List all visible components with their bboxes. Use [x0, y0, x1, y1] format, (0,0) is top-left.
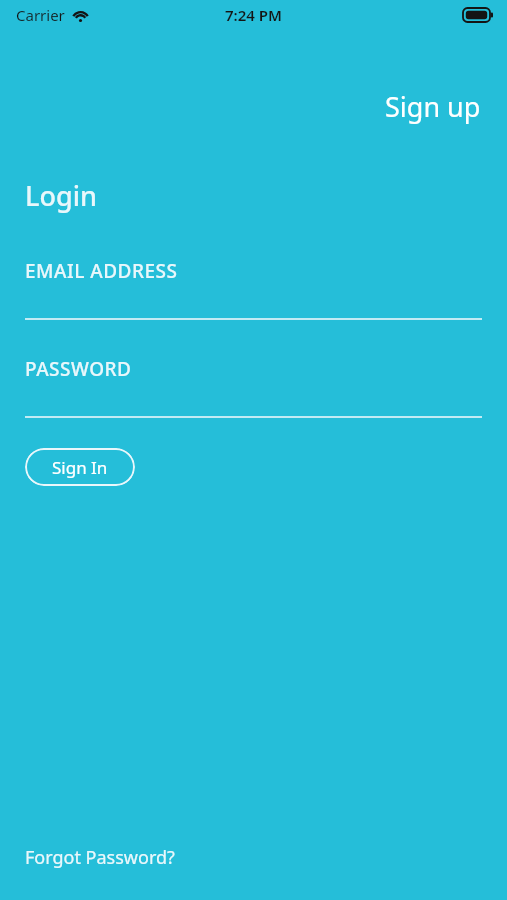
staticText: EMAIL ADDRESS: [25, 258, 178, 284]
other: Wi-Fi signal: [72, 9, 89, 22]
staticText: Forgot Password?: [25, 845, 175, 870]
button[interactable]: Sign up: [361, 84, 507, 129]
staticText: PASSWORD: [25, 356, 132, 382]
staticText: Sign up: [385, 88, 481, 125]
staticText: Carrier: [16, 5, 65, 25]
other: Battery full: [463, 8, 493, 22]
staticText: Login: [25, 177, 97, 214]
button[interactable]: Forgot Password?: [25, 845, 175, 870]
staticText: Sign In: [52, 456, 108, 479]
button[interactable]: Sign In: [25, 448, 135, 486]
staticText: 7:24 PM: [225, 5, 282, 25]
